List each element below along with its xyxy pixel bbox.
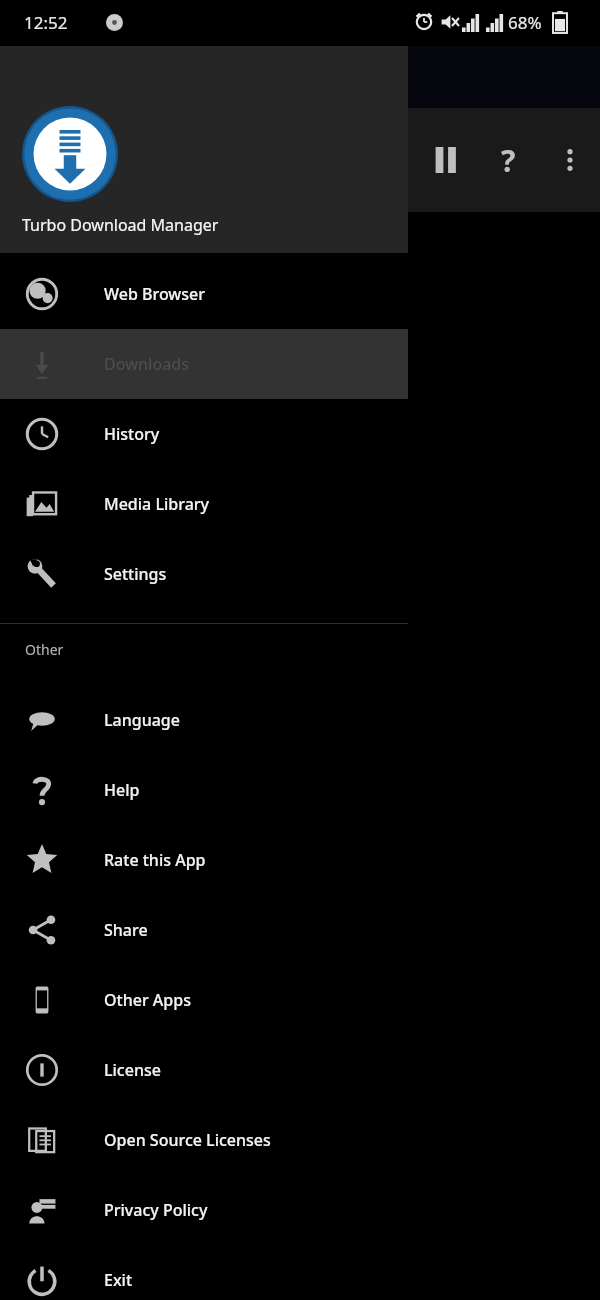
staticText: 68% bbox=[508, 11, 542, 34]
staticText: Web Browser bbox=[104, 283, 206, 305]
staticText: Downloads bbox=[104, 353, 190, 375]
staticText: Rate this App bbox=[104, 849, 206, 871]
button[interactable]: More options bbox=[542, 132, 598, 188]
button[interactable]: Other Apps bbox=[0, 965, 408, 1035]
button[interactable]: Exit bbox=[0, 1245, 408, 1300]
staticText: Open Source Licenses bbox=[104, 1129, 271, 1151]
button[interactable]: Help bbox=[480, 132, 536, 188]
staticText: 12:52 bbox=[24, 11, 68, 34]
button[interactable]: Web Browser bbox=[0, 259, 408, 329]
button[interactable]: License bbox=[0, 1035, 408, 1105]
staticText: Media Library bbox=[104, 493, 210, 515]
staticText: Language bbox=[104, 709, 180, 731]
button[interactable]: History bbox=[0, 399, 408, 469]
staticText: History bbox=[104, 423, 160, 445]
staticText: Turbo Download Manager bbox=[22, 214, 219, 236]
button[interactable]: Help bbox=[0, 755, 408, 825]
staticText: Other Apps bbox=[104, 989, 191, 1011]
staticText: Other bbox=[25, 640, 64, 659]
button[interactable]: Open Source Licenses bbox=[0, 1105, 408, 1175]
staticText: Settings bbox=[104, 563, 167, 585]
staticText: Share bbox=[104, 919, 148, 941]
button[interactable]: Language bbox=[0, 685, 408, 755]
staticText: Privacy Policy bbox=[104, 1199, 208, 1221]
button[interactable]: Privacy Policy bbox=[0, 1175, 408, 1245]
staticText: ? bbox=[501, 140, 516, 181]
button[interactable]: Rate this App bbox=[0, 825, 408, 895]
staticText: License bbox=[104, 1059, 161, 1081]
staticText: Help bbox=[104, 779, 140, 801]
button[interactable]: Pause bbox=[418, 132, 474, 188]
staticText: Exit bbox=[104, 1269, 133, 1291]
button[interactable]: Settings bbox=[0, 539, 408, 609]
button[interactable]: Share bbox=[0, 895, 408, 965]
button[interactable]: Media Library bbox=[0, 469, 408, 539]
